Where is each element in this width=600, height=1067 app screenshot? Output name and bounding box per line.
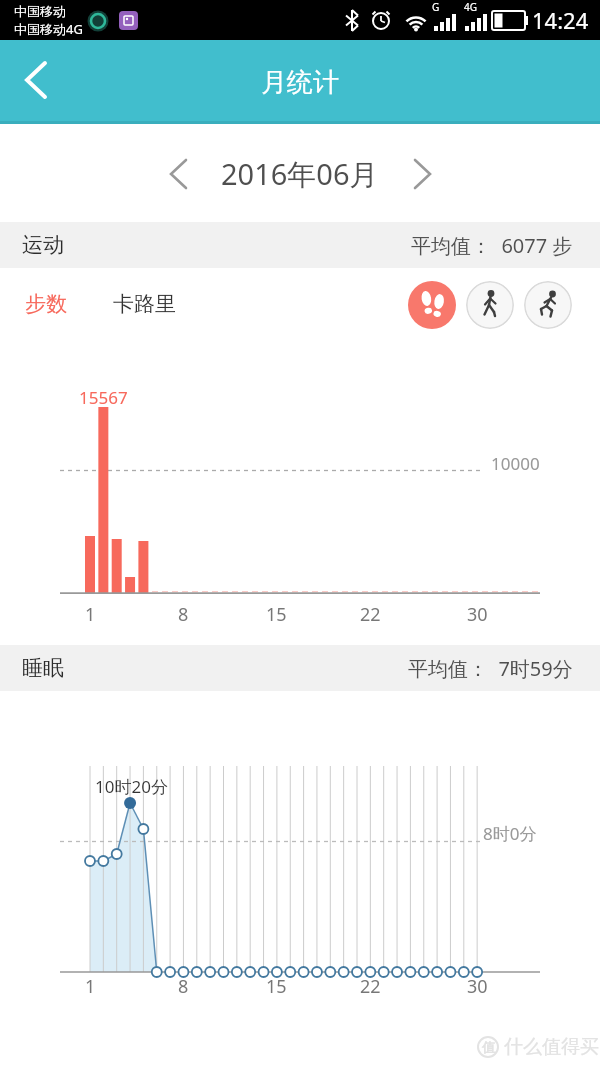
- staticText: 8时0分: [483, 822, 537, 842]
- staticText: 中国移动: [14, 3, 66, 19]
- button[interactable]: [408, 281, 456, 329]
- button[interactable]: 步数: [25, 276, 87, 332]
- button[interactable]: 卡路里: [113, 276, 193, 332]
- staticText: 睡眠: [22, 655, 64, 681]
- staticText: 什么值得买: [504, 1035, 599, 1059]
- staticText: 15: [266, 602, 287, 622]
- staticText: 22: [360, 974, 381, 994]
- button[interactable]: [10, 52, 66, 112]
- staticText: 1: [85, 602, 96, 622]
- staticText: 14:24: [532, 5, 589, 35]
- staticText: 值: [482, 1039, 495, 1055]
- staticText: 8: [178, 974, 189, 994]
- staticText: 2016年06月: [221, 154, 379, 194]
- staticText: 22: [360, 602, 381, 622]
- staticText: 月统计: [261, 66, 339, 99]
- staticText: 30: [467, 602, 488, 622]
- staticText: 4G: [464, 0, 477, 12]
- staticText: 10000: [491, 452, 540, 471]
- staticText: 30: [467, 974, 488, 994]
- staticText: 卡路里: [113, 291, 176, 317]
- button[interactable]: [150, 146, 206, 202]
- button[interactable]: [395, 146, 451, 202]
- button[interactable]: [524, 281, 572, 329]
- staticText: 运动: [22, 232, 64, 258]
- staticText: 平均值： 7时59分: [408, 655, 573, 682]
- staticText: 15: [266, 974, 287, 994]
- staticText: 步数: [25, 291, 67, 317]
- staticText: G: [432, 0, 440, 12]
- staticText: 10时20分: [95, 775, 168, 795]
- button[interactable]: [466, 281, 514, 329]
- staticText: 8: [178, 602, 189, 622]
- staticText: 中国移动4G: [14, 20, 83, 38]
- staticText: 1: [85, 974, 96, 994]
- staticText: 15567: [79, 386, 128, 405]
- staticText: 平均值： 6077 步: [411, 232, 573, 259]
